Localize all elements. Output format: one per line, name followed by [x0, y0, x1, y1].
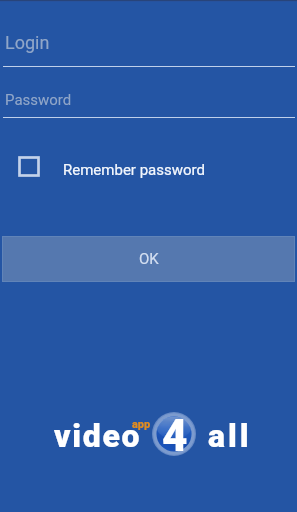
button[interactable]: Password: [0, 71, 297, 117]
staticText: OK: [139, 250, 159, 268]
staticText: video: [54, 417, 142, 455]
staticText: app: [132, 418, 151, 431]
staticText: Password: [5, 91, 72, 109]
staticText: all: [208, 417, 252, 455]
staticText: Remember password: [63, 161, 205, 179]
staticText: Login: [5, 32, 50, 53]
staticText: 4: [162, 410, 188, 462]
button[interactable]: OK: [2, 236, 295, 282]
button[interactable]: Remember password: [14, 148, 214, 184]
button[interactable]: Login: [0, 16, 297, 67]
